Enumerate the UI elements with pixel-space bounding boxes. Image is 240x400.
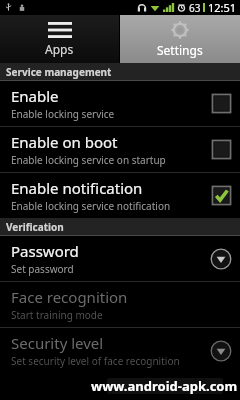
staticText: Start training mode <box>11 308 103 322</box>
button[interactable]: Unchecked <box>211 93 232 114</box>
button[interactable]: Settings <box>120 15 240 63</box>
staticText: Enable locking service notification <box>11 199 171 213</box>
staticText: Enable locking service <box>11 107 115 121</box>
staticText: Enable notification <box>11 178 143 198</box>
staticText: 63 <box>189 1 201 15</box>
button[interactable]: Security level <box>0 328 240 373</box>
button[interactable]: Checked <box>211 185 232 206</box>
staticText: www.android-apk.com <box>91 377 238 395</box>
button[interactable]: Password <box>0 236 240 281</box>
button[interactable]: Enable <box>0 81 240 126</box>
staticText: Verification <box>6 220 64 234</box>
button[interactable]: Enable on boot <box>0 127 240 172</box>
button[interactable]: Face recognition <box>0 282 240 327</box>
staticText: Service management <box>6 65 112 79</box>
button[interactable]: Apps <box>0 15 119 63</box>
button[interactable]: Enable notification <box>0 173 240 218</box>
staticText: Set security level of face recognition <box>11 354 180 368</box>
button[interactable]: Expand <box>210 248 232 270</box>
button[interactable]: Expand <box>210 340 232 362</box>
staticText: Password <box>11 241 79 261</box>
staticText: Enable <box>11 86 59 106</box>
staticText: Apps <box>45 41 74 57</box>
staticText: Security level <box>11 333 104 353</box>
staticText: Enable on boot <box>11 132 118 152</box>
staticText: Settings <box>157 42 203 58</box>
staticText: Enable locking service on startup <box>11 153 166 167</box>
button[interactable]: Unchecked <box>211 139 232 160</box>
staticText: Set password <box>11 262 74 276</box>
staticText: 12:51 <box>208 0 237 15</box>
staticText: Face recognition <box>11 287 128 307</box>
